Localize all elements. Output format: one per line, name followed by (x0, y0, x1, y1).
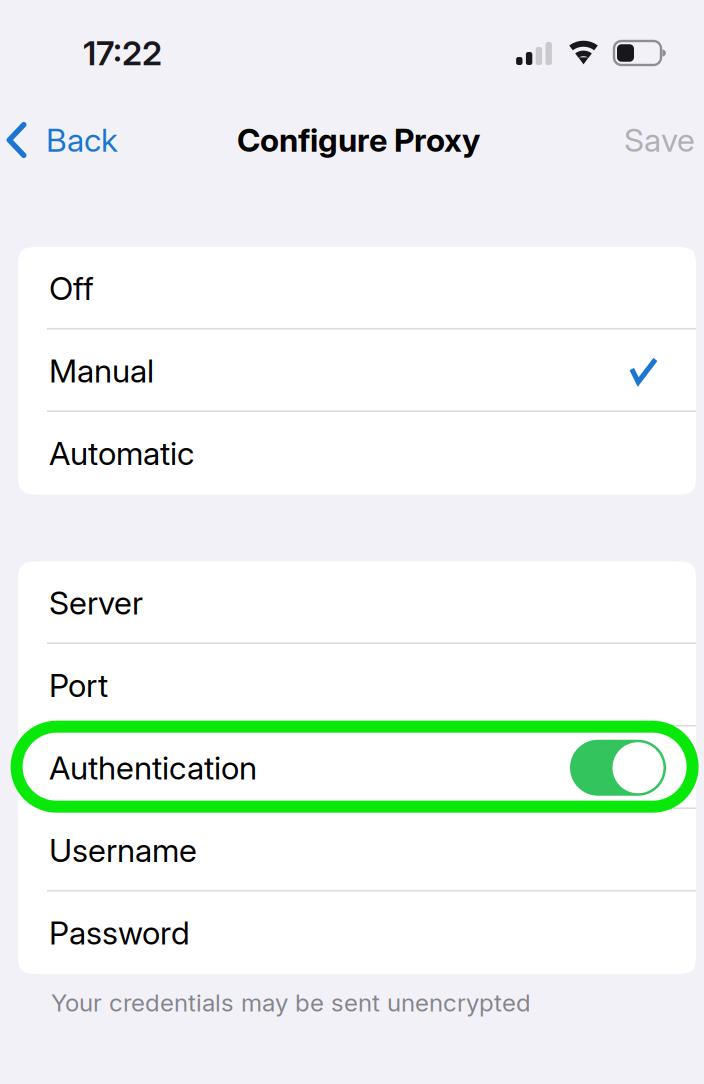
button[interactable]: Save (610, 103, 704, 177)
staticText: Server (49, 583, 143, 622)
button[interactable]: Automatic (18, 412, 696, 494)
button[interactable]: Off (18, 247, 696, 329)
staticText: Off (49, 269, 94, 308)
staticText: Your credentials may be sent unencrypted (51, 988, 531, 1017)
staticText: Password (49, 913, 190, 952)
button[interactable]: Authentication (18, 726, 696, 809)
staticText: Configure Proxy (237, 121, 480, 159)
staticText: Authentication (49, 748, 257, 787)
staticText: 17:22 (83, 33, 162, 73)
staticText: Back (46, 121, 118, 159)
button[interactable]: Username (18, 809, 696, 891)
staticText: Automatic (49, 434, 194, 473)
button[interactable]: Manual (18, 329, 696, 412)
button[interactable]: Password (18, 891, 696, 974)
staticText: Manual (49, 351, 154, 390)
button[interactable]: Back (0, 103, 132, 177)
button[interactable]: Port (18, 644, 696, 726)
staticText: Username (49, 831, 197, 870)
staticText: Port (49, 666, 108, 705)
button[interactable]: Authentication, on (570, 740, 666, 796)
button[interactable]: Server (18, 561, 696, 644)
staticText: Save (624, 121, 695, 159)
